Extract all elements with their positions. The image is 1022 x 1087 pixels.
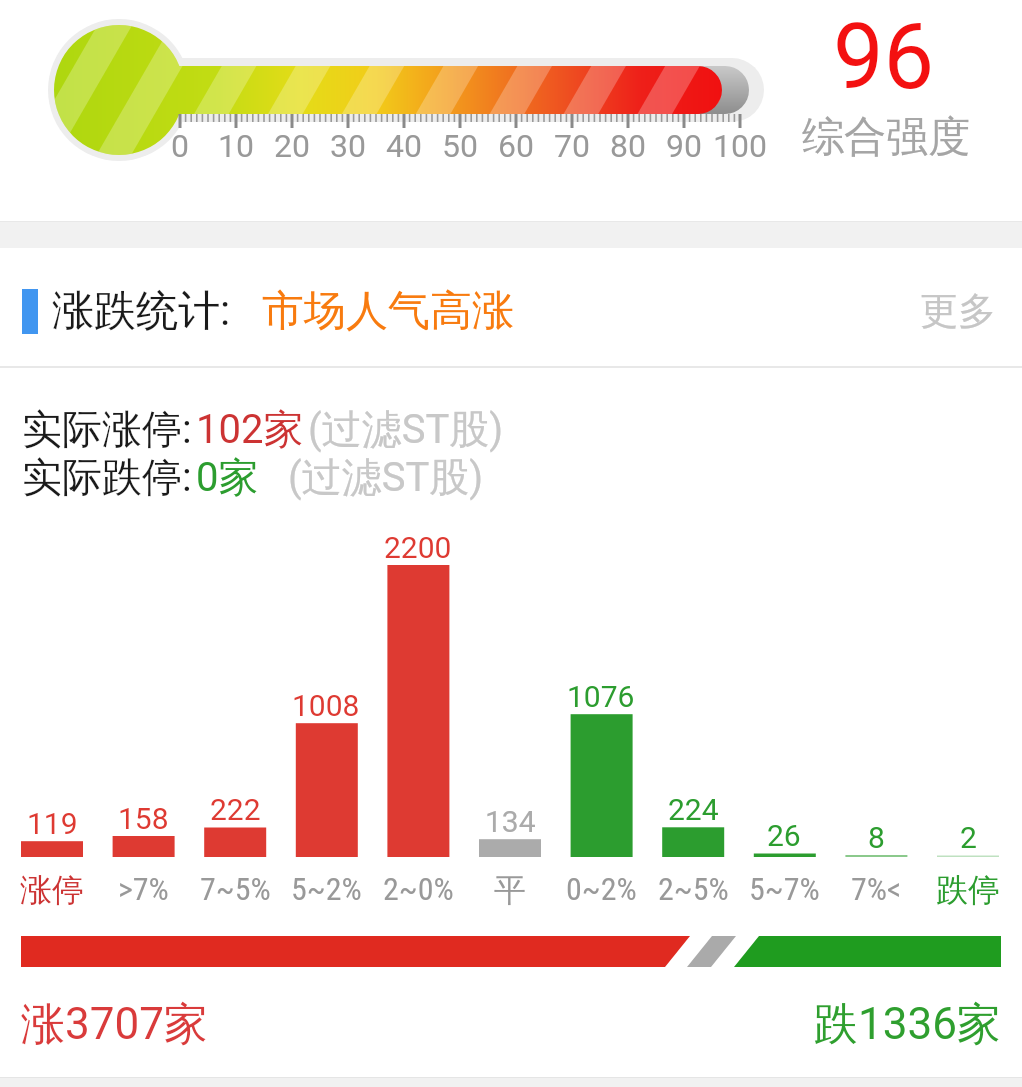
staticText: 26	[767, 818, 801, 853]
staticText: 224	[668, 792, 719, 827]
staticText: 市场人气高涨	[262, 285, 514, 338]
staticText: >7%	[118, 870, 169, 908]
staticText: 实际涨停:	[22, 404, 192, 454]
staticText: 1008	[292, 688, 360, 723]
staticText: 2200	[384, 530, 452, 565]
staticText: 70	[554, 127, 590, 165]
staticText: 涨3707家	[21, 997, 208, 1052]
staticText: 2~0%	[383, 870, 454, 908]
button[interactable]: 更多	[905, 283, 1010, 339]
staticText: 0	[171, 127, 189, 165]
staticText: 平	[494, 870, 526, 910]
staticText: 涨停	[20, 870, 84, 910]
staticText: 5~2%	[291, 870, 362, 908]
staticText: 更多	[920, 287, 996, 335]
staticText: 跌停	[936, 870, 1000, 910]
staticText: (过滤ST股)	[288, 452, 484, 502]
staticText: 7%<	[851, 870, 902, 908]
staticText: 100	[713, 127, 767, 165]
staticText: 158	[118, 801, 169, 836]
staticText: 80	[610, 127, 646, 165]
staticText: 96	[833, 5, 935, 110]
staticText: 30	[330, 127, 366, 165]
staticText: 60	[498, 127, 534, 165]
staticText: 涨跌统计:	[52, 285, 231, 338]
staticText: 102家	[196, 404, 304, 454]
staticText: 119	[27, 806, 78, 841]
staticText: 5~7%	[749, 870, 820, 908]
staticText: 2~5%	[658, 870, 729, 908]
staticText: 10	[218, 127, 254, 165]
staticText: 222	[210, 792, 261, 827]
staticText: 20	[274, 127, 310, 165]
staticText: 2	[960, 820, 977, 855]
staticText: 50	[442, 127, 478, 165]
staticText: 90	[666, 127, 702, 165]
staticText: 134	[485, 804, 536, 839]
staticText: 1076	[567, 679, 635, 714]
staticText: 40	[386, 127, 422, 165]
staticText: 8	[868, 820, 885, 855]
staticText: 7~5%	[200, 870, 271, 908]
staticText: (过滤ST股)	[308, 404, 504, 454]
staticText: 跌1336家	[814, 997, 1001, 1052]
staticText: 0家	[196, 452, 259, 502]
staticText: 实际跌停:	[22, 452, 192, 502]
staticText: 综合强度	[802, 111, 970, 164]
staticText: 0~2%	[566, 870, 637, 908]
